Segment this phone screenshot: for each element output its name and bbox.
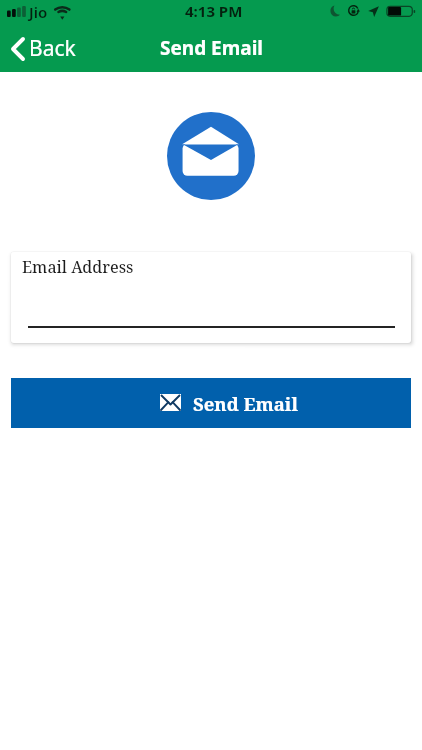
button[interactable]: Back bbox=[0, 26, 88, 71]
button[interactable]: Email Address bbox=[11, 252, 411, 343]
staticText: Email Address bbox=[22, 256, 134, 278]
staticText: Send Email bbox=[193, 391, 298, 416]
other: Email bbox=[167, 112, 255, 200]
staticText: Send Email bbox=[160, 35, 263, 61]
staticText: Jio bbox=[29, 2, 48, 22]
staticText: Back bbox=[29, 34, 76, 63]
button[interactable]: Send Email bbox=[11, 378, 411, 428]
staticText: 4:13 PM bbox=[185, 1, 243, 21]
